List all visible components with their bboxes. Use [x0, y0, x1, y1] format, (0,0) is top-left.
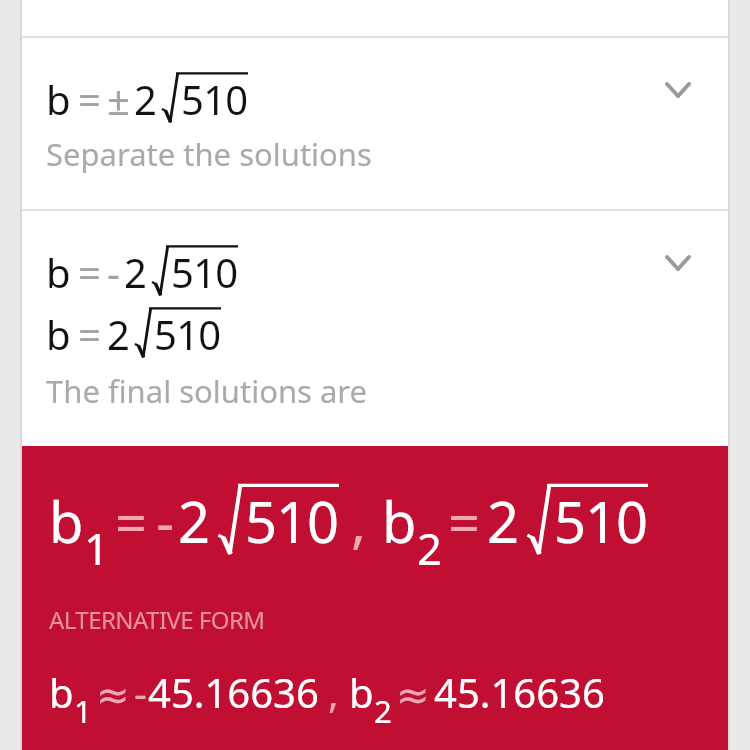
staticText: 2 — [487, 483, 520, 559]
staticText: - — [156, 483, 175, 559]
staticText: 2 — [124, 245, 147, 299]
staticText: 45.16636 — [434, 665, 605, 719]
staticText: 510 — [554, 483, 648, 559]
staticText: ≈ — [96, 672, 130, 719]
staticText: 2 — [178, 483, 211, 559]
staticText: 1 — [74, 690, 92, 732]
staticText: = — [115, 483, 148, 559]
staticText: b — [349, 665, 374, 719]
staticText: 45.16636 — [148, 665, 319, 719]
staticText: 1 — [84, 518, 109, 577]
staticText: 510 — [154, 307, 221, 361]
staticText: 2 — [134, 72, 157, 126]
button[interactable]: b — [22, 38, 728, 209]
staticText: = — [78, 72, 101, 126]
staticText: 510 — [181, 72, 248, 126]
button[interactable]: b — [22, 211, 728, 446]
other: Expand step — [665, 255, 691, 271]
staticText: = — [448, 483, 481, 559]
staticText: = — [78, 307, 101, 361]
staticText: ≈ — [396, 672, 430, 719]
staticText: - — [107, 245, 120, 299]
staticText: Separate the solutions — [46, 133, 372, 175]
staticText: b — [46, 307, 71, 361]
staticText: b — [46, 72, 71, 126]
other: Expand step — [665, 82, 691, 98]
staticText: ALTERNATIVE FORM — [49, 603, 265, 636]
staticText: 2 — [374, 690, 392, 732]
staticText: 2 — [107, 307, 130, 361]
staticText: ± — [107, 72, 130, 126]
staticText: 510 — [245, 483, 339, 559]
staticText: 510 — [171, 245, 238, 299]
staticText: b — [46, 245, 71, 299]
staticText: = — [78, 245, 101, 299]
staticText: The final solutions are — [46, 370, 368, 412]
staticText: b — [49, 483, 84, 559]
staticText: , — [351, 483, 367, 559]
staticText: b — [382, 483, 417, 559]
staticText: , — [328, 665, 339, 719]
staticText: - — [134, 665, 147, 719]
staticText: b — [49, 665, 74, 719]
staticText: 2 — [417, 518, 442, 577]
